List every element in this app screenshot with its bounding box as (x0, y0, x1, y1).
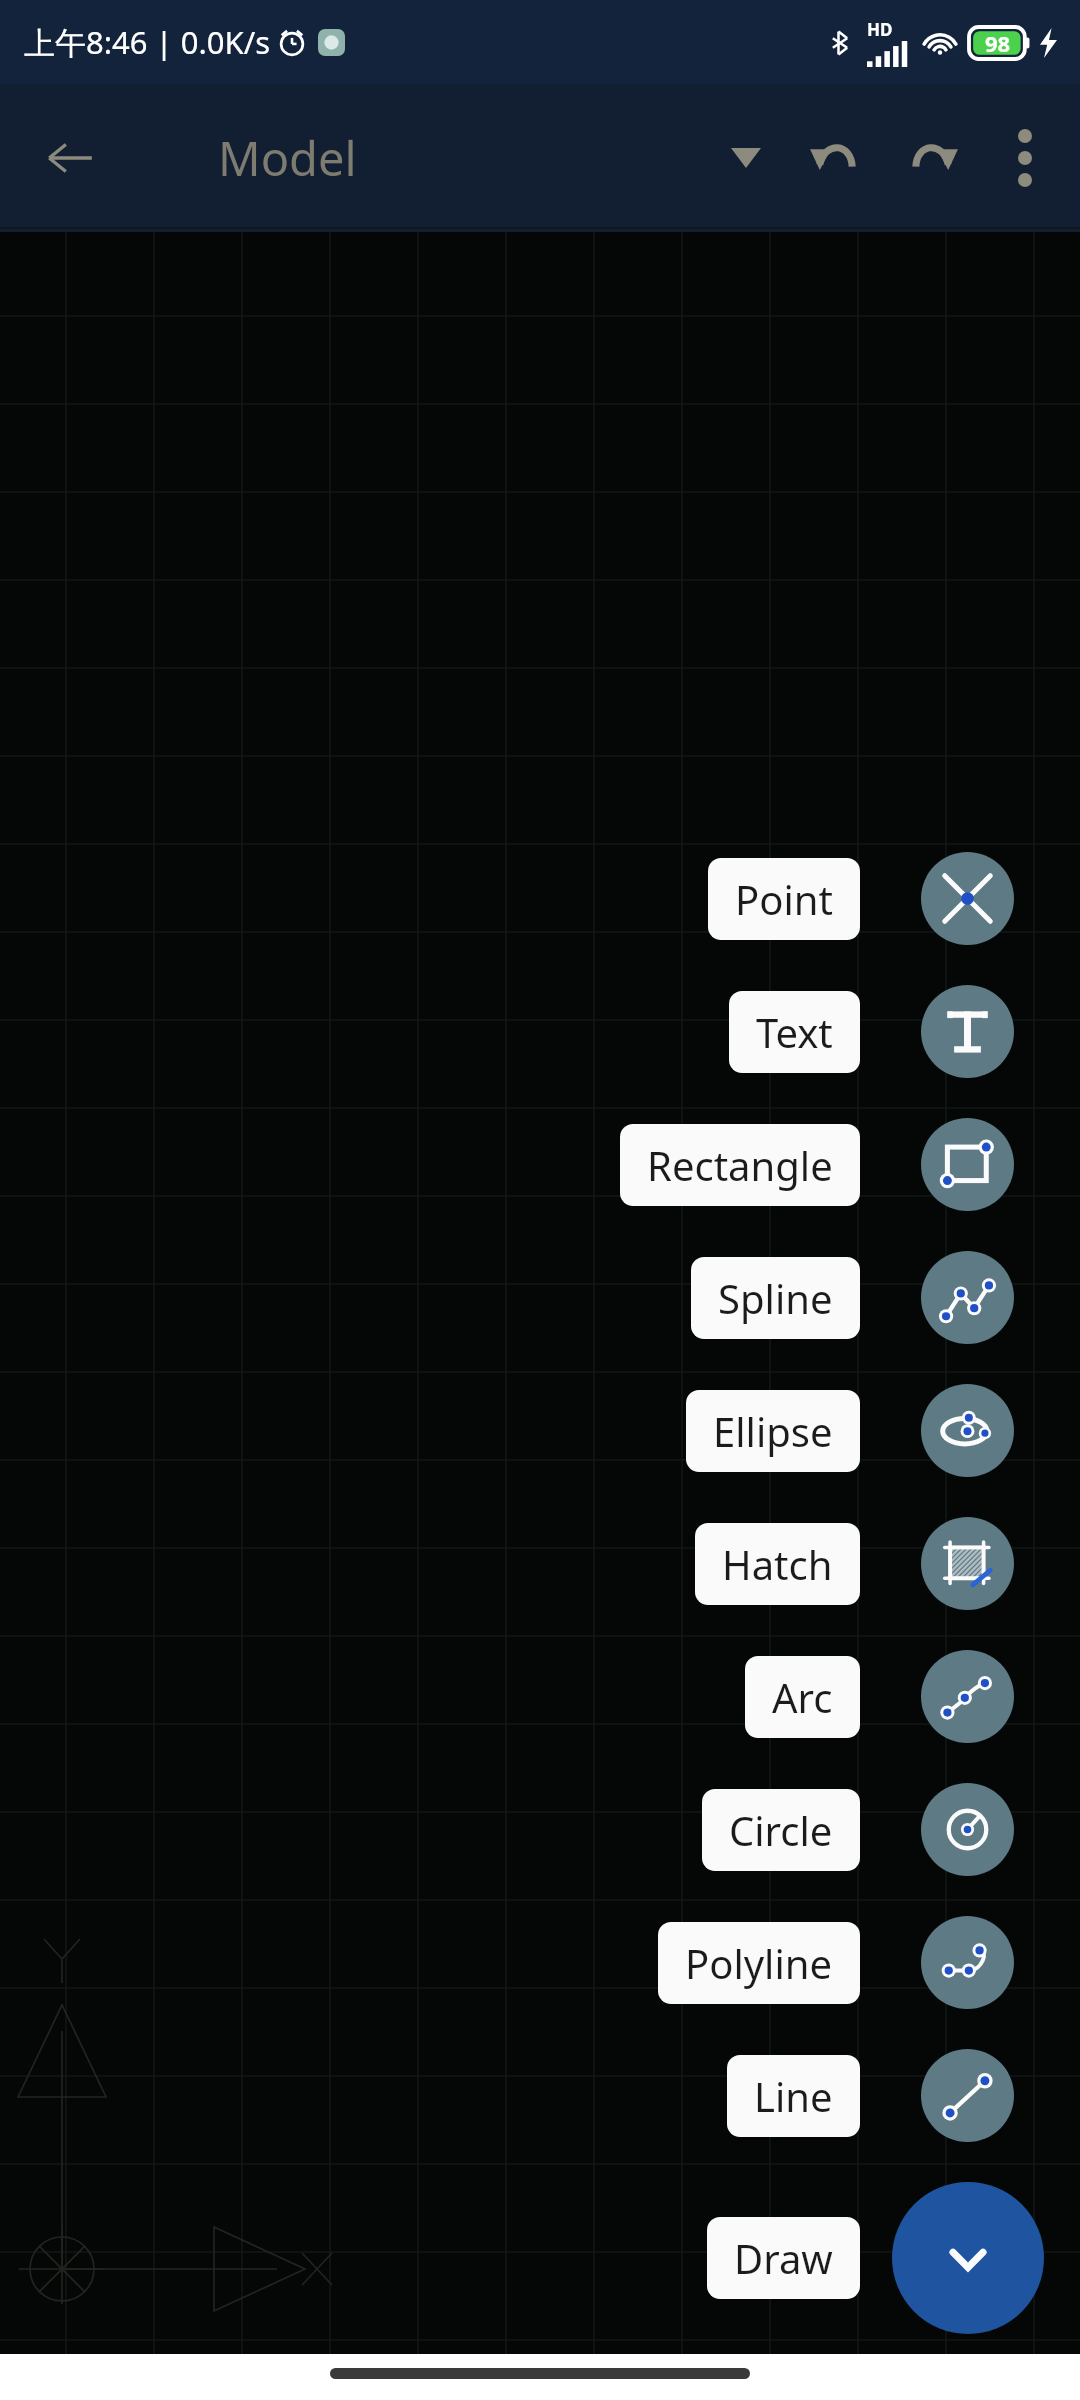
staticText: Ellipse (713, 1404, 833, 1458)
staticText: Polyline (685, 1936, 833, 1990)
button[interactable]: Point (708, 858, 860, 940)
button[interactable]: Arc (921, 1650, 1014, 1743)
button[interactable]: Point (921, 852, 1014, 945)
button[interactable]: Draw (707, 2217, 860, 2299)
staticText: Draw (734, 2231, 833, 2285)
button[interactable]: Undo (788, 110, 884, 206)
staticText: 98 (985, 28, 1011, 58)
button[interactable]: Arc (745, 1656, 860, 1738)
staticText: Circle (729, 1803, 833, 1857)
button[interactable]: Text (921, 985, 1014, 1078)
button[interactable]: Back (28, 116, 112, 200)
button[interactable]: Line (727, 2055, 860, 2137)
staticText: Text (756, 1005, 833, 1059)
button[interactable]: Line (921, 2049, 1014, 2142)
button[interactable]: Redo (884, 110, 980, 206)
button[interactable]: Polyline (658, 1922, 860, 2004)
button[interactable]: Select layer (704, 116, 788, 200)
staticText: Model (218, 126, 357, 190)
staticText: Rectangle (647, 1138, 833, 1192)
button[interactable]: Polyline (921, 1916, 1014, 2009)
button[interactable]: Rectangle (620, 1124, 860, 1206)
button[interactable]: Hatch (921, 1517, 1014, 1610)
button[interactable]: Ellipse (921, 1384, 1014, 1477)
staticText: Point (735, 872, 833, 926)
staticText: Line (754, 2069, 833, 2123)
button[interactable]: Hatch (695, 1523, 860, 1605)
staticText: 上午8:46 | 0.0K/s (24, 21, 271, 63)
staticText: Spline (718, 1271, 833, 1325)
button[interactable]: Circle (921, 1783, 1014, 1876)
button[interactable]: More options (980, 113, 1070, 203)
button[interactable]: Spline (691, 1257, 860, 1339)
button[interactable]: Ellipse (686, 1390, 860, 1472)
button[interactable]: Collapse draw menu (892, 2182, 1044, 2334)
staticText: Hatch (722, 1537, 833, 1591)
button[interactable]: Circle (702, 1789, 860, 1871)
button[interactable]: Spline (921, 1251, 1014, 1344)
button[interactable]: Text (729, 991, 860, 1073)
staticText: Arc (772, 1670, 833, 1724)
button[interactable]: Rectangle (921, 1118, 1014, 1211)
staticText: HD (867, 18, 893, 41)
